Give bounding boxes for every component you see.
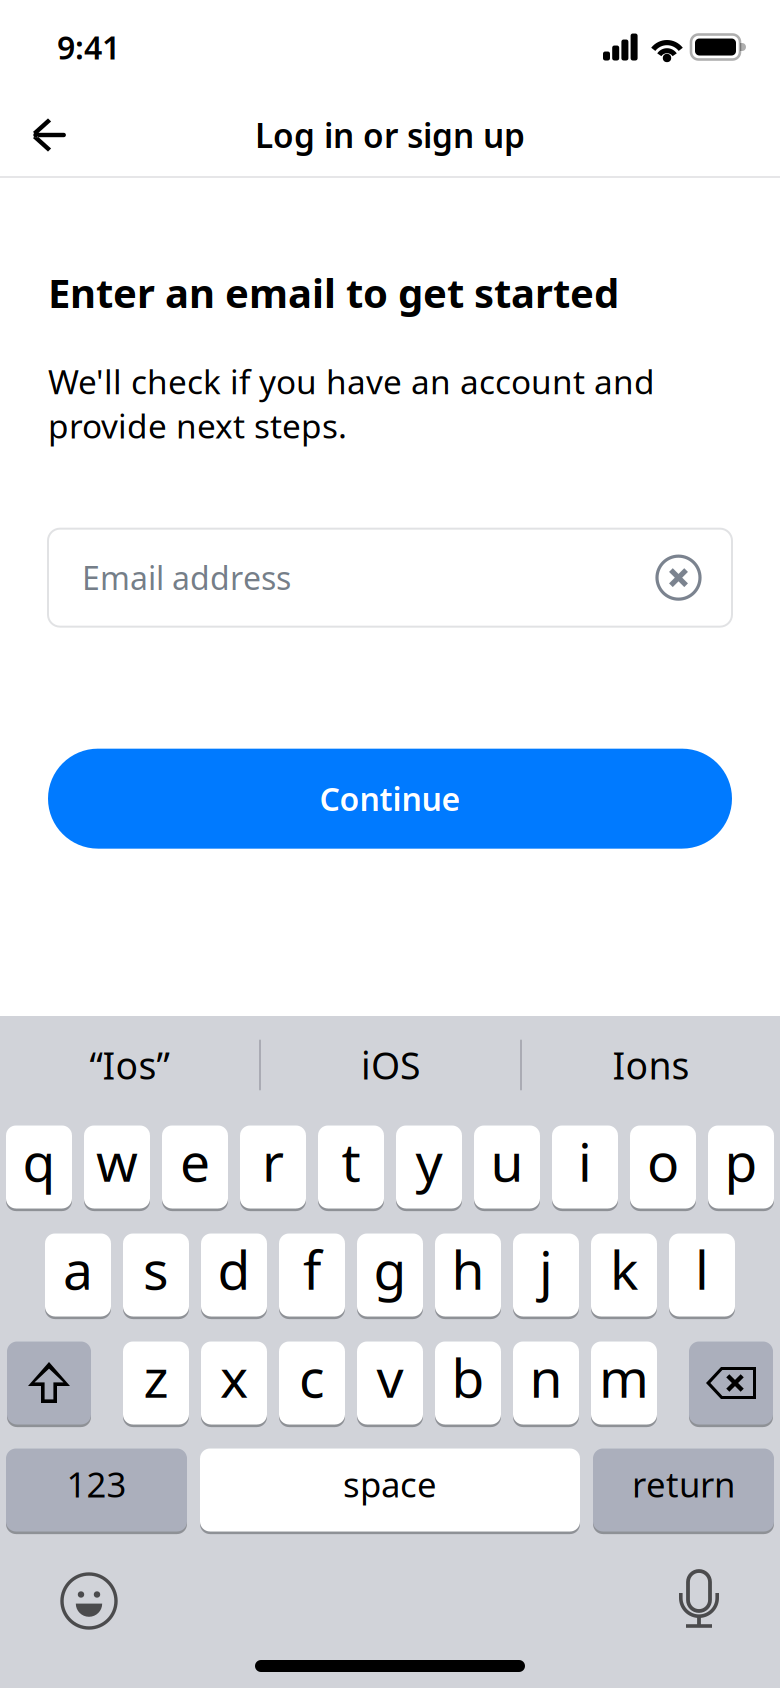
staticText: 9:41	[57, 26, 120, 68]
button[interactable]: 123	[6, 1447, 187, 1533]
staticText: Email address	[82, 556, 291, 599]
staticText: u	[490, 1126, 523, 1196]
button[interactable]: o	[630, 1124, 696, 1210]
button[interactable]: Email address	[48, 529, 732, 627]
staticText: y	[415, 1126, 442, 1196]
staticText: j	[539, 1234, 553, 1304]
staticText: n	[529, 1342, 562, 1412]
button[interactable]: p	[708, 1124, 774, 1210]
button[interactable]: s	[123, 1232, 189, 1318]
button[interactable]: u	[474, 1124, 540, 1210]
staticText: “Ios”	[89, 1040, 169, 1090]
staticText: d	[217, 1234, 250, 1304]
button[interactable]: space	[200, 1447, 580, 1533]
staticText: Enter an email to get started	[48, 266, 619, 319]
button[interactable]: v	[357, 1340, 423, 1426]
staticText: m	[599, 1342, 649, 1412]
button[interactable]: g	[357, 1232, 423, 1318]
staticText: g	[373, 1234, 406, 1304]
button[interactable]: a	[45, 1232, 111, 1318]
button[interactable]: j	[513, 1232, 579, 1318]
button[interactable]: q	[6, 1124, 72, 1210]
button[interactable]: y	[396, 1124, 462, 1210]
staticText: h	[451, 1234, 484, 1304]
staticText: Continue	[319, 777, 460, 820]
button[interactable]: i	[552, 1124, 618, 1210]
staticText: iOS	[361, 1040, 420, 1090]
button[interactable]: t	[318, 1124, 384, 1210]
staticText: i	[578, 1126, 592, 1196]
staticText: x	[220, 1342, 248, 1412]
button[interactable]: Shift	[7, 1340, 91, 1426]
button[interactable]: b	[435, 1340, 501, 1426]
button[interactable]: Continue	[48, 749, 732, 849]
button[interactable]: m	[591, 1340, 657, 1426]
button[interactable]: l	[669, 1232, 735, 1318]
staticText: t	[341, 1126, 360, 1196]
button[interactable]: w	[84, 1124, 150, 1210]
button[interactable]: Back	[0, 94, 98, 176]
staticText: c	[299, 1342, 325, 1412]
staticText: w	[96, 1126, 138, 1196]
staticText: a	[63, 1234, 93, 1304]
button[interactable]: Emoji keyboard	[52, 1564, 126, 1638]
button[interactable]: “Ios”	[0, 1027, 259, 1103]
button[interactable]: f	[279, 1232, 345, 1318]
button[interactable]: d	[201, 1232, 267, 1318]
staticText: q	[22, 1126, 55, 1196]
staticText: f	[303, 1234, 321, 1304]
button[interactable]: Ions	[522, 1027, 780, 1103]
button[interactable]: Dictation	[662, 1564, 736, 1638]
button[interactable]: h	[435, 1232, 501, 1318]
button[interactable]: c	[279, 1340, 345, 1426]
button[interactable]: k	[591, 1232, 657, 1318]
staticText: o	[647, 1126, 679, 1196]
button[interactable]: z	[123, 1340, 189, 1426]
staticText: l	[695, 1234, 709, 1304]
staticText: Log in or sign up	[255, 113, 525, 157]
staticText: s	[143, 1234, 169, 1304]
staticText: r	[262, 1126, 284, 1196]
staticText: Ions	[612, 1040, 689, 1090]
button[interactable]: return	[593, 1447, 774, 1533]
staticText: We'll check if you have an account and p…	[48, 359, 655, 448]
button[interactable]: Delete	[689, 1340, 773, 1426]
staticText: return	[632, 1461, 735, 1507]
staticText: space	[343, 1461, 437, 1507]
staticText: b	[451, 1342, 484, 1412]
button[interactable]: n	[513, 1340, 579, 1426]
button[interactable]: iOS	[261, 1027, 520, 1103]
button[interactable]: x	[201, 1340, 267, 1426]
staticText: p	[724, 1126, 757, 1196]
button[interactable]: r	[240, 1124, 306, 1210]
staticText: e	[180, 1126, 210, 1196]
staticText: z	[143, 1342, 168, 1412]
button[interactable]: e	[162, 1124, 228, 1210]
staticText: k	[610, 1234, 638, 1304]
staticText: 123	[66, 1461, 126, 1507]
staticText: v	[376, 1342, 403, 1412]
